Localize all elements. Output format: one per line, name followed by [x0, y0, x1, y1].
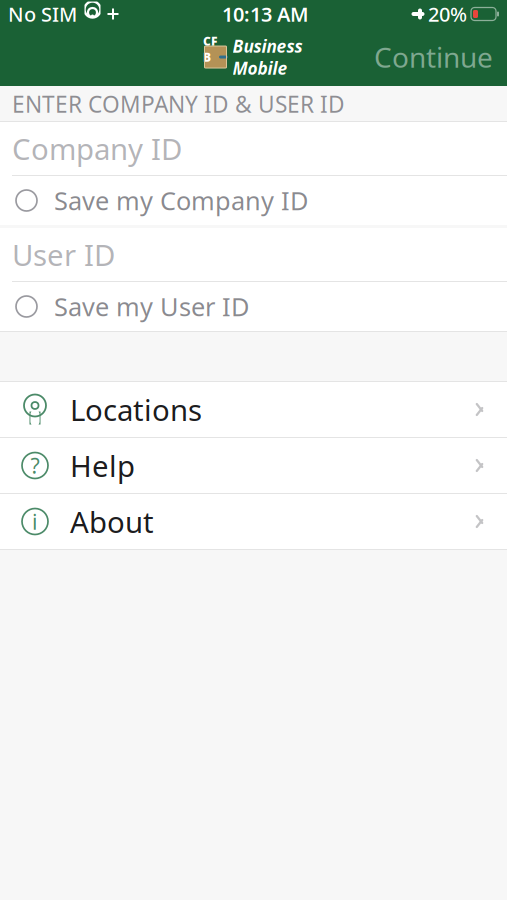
staticText: 10:13 AM [222, 1, 309, 27]
button[interactable]: User ID [0, 228, 507, 281]
staticText: ENTER COMPANY ID & USER ID [12, 89, 345, 119]
staticText: B [203, 49, 211, 65]
staticText: Business [232, 34, 302, 57]
button[interactable]: Company ID [0, 122, 507, 175]
button[interactable]: Locations [0, 382, 507, 437]
button[interactable]: ? [0, 438, 507, 493]
staticText: Save my Company ID [54, 184, 308, 217]
staticText: Mobile [232, 56, 287, 79]
staticText: No SIM [8, 1, 77, 27]
staticText: About [70, 502, 154, 541]
staticText: i [32, 507, 38, 536]
button[interactable]: Save my User ID [0, 282, 507, 331]
button[interactable]: i [0, 494, 507, 549]
staticText: Company ID [12, 129, 182, 168]
button[interactable]: Continue [360, 30, 507, 84]
staticText: ? [30, 451, 39, 480]
button[interactable]: Save my Company ID [0, 176, 507, 225]
staticText: Continue [374, 38, 493, 76]
staticText: CF [203, 33, 217, 49]
staticText: Locations [70, 390, 202, 429]
staticText: User ID [12, 235, 115, 274]
staticText: Save my User ID [54, 290, 249, 323]
staticText: 20% [428, 1, 467, 27]
staticText: Help [70, 446, 135, 485]
